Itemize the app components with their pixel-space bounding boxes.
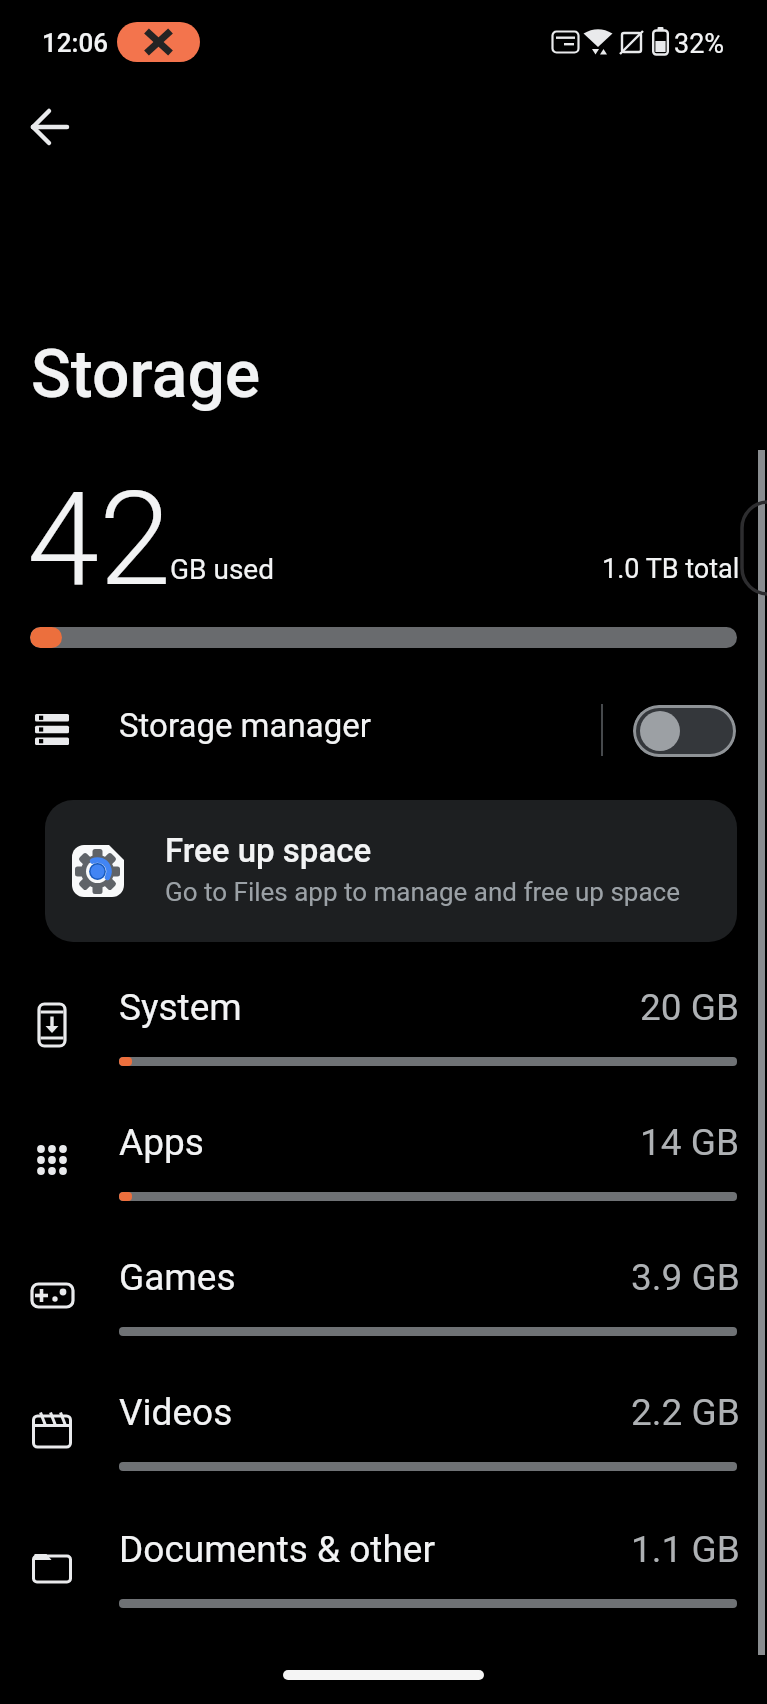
button[interactable]: Apps bbox=[0, 1105, 767, 1230]
staticText: Free up space bbox=[165, 831, 372, 870]
staticText: 12:06 bbox=[42, 28, 109, 58]
button[interactable]: Games bbox=[0, 1240, 767, 1365]
staticText: Storage manager bbox=[119, 706, 371, 745]
staticText: 2.2 GB bbox=[631, 1391, 740, 1434]
button[interactable]: Documents & other bbox=[0, 1512, 767, 1637]
staticText: System bbox=[119, 986, 242, 1029]
staticText: 32% bbox=[674, 28, 725, 60]
staticText: 3.9 GB bbox=[631, 1256, 740, 1299]
staticText: Games bbox=[119, 1256, 236, 1299]
staticText: Apps bbox=[119, 1121, 204, 1164]
button[interactable] bbox=[20, 96, 82, 158]
staticText: 20 GB bbox=[640, 986, 740, 1029]
button[interactable]: System bbox=[0, 970, 767, 1095]
staticText: Storage bbox=[31, 336, 261, 413]
button[interactable]: Free up space bbox=[45, 800, 737, 942]
staticText: GB used bbox=[170, 553, 274, 586]
button[interactable]: Videos bbox=[0, 1375, 767, 1500]
staticText: 42 bbox=[27, 463, 172, 615]
staticText: Documents & other bbox=[119, 1528, 435, 1571]
button[interactable] bbox=[633, 705, 736, 757]
staticText: 14 GB bbox=[640, 1121, 740, 1164]
staticText: 1.1 GB bbox=[631, 1528, 740, 1571]
staticText: Videos bbox=[119, 1391, 233, 1434]
button[interactable]: Storage manager bbox=[0, 690, 767, 770]
staticText: 1.0 TB total bbox=[602, 553, 740, 585]
staticText: Go to Files app to manage and free up sp… bbox=[165, 877, 680, 907]
